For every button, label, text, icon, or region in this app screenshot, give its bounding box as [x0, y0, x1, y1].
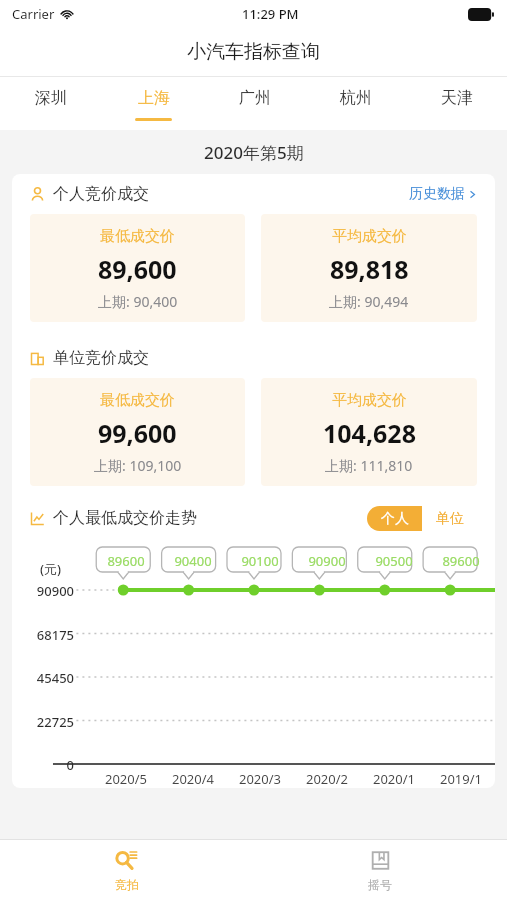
- button[interactable]: 天津: [406, 77, 507, 130]
- staticText: 上海: [138, 88, 170, 108]
- staticText: 2020/4: [163, 770, 223, 788]
- staticText: 68175: [12, 626, 74, 644]
- staticText: 2020/5: [96, 770, 156, 788]
- staticText: 89,818: [330, 252, 409, 286]
- staticText: 个人竞价成交: [53, 184, 149, 204]
- staticText: 90900: [297, 552, 357, 570]
- staticText: 0: [12, 756, 74, 774]
- staticText: 单位: [436, 510, 464, 528]
- staticText: 上期: 90,400: [98, 292, 178, 311]
- staticText: 2020/3: [230, 770, 290, 788]
- staticText: 杭州: [340, 88, 372, 108]
- staticText: 90900: [12, 582, 74, 600]
- staticText: 深圳: [35, 88, 67, 108]
- staticText: 摇号: [368, 877, 392, 892]
- staticText: 个人: [381, 510, 409, 528]
- button[interactable]: 单位: [422, 506, 477, 531]
- staticText: 2020年第5期: [204, 141, 304, 164]
- button[interactable]: 最低成交价: [30, 214, 245, 322]
- button[interactable]: 个人: [367, 506, 422, 531]
- staticText: 2020/2: [297, 770, 357, 788]
- staticText: (元): [40, 560, 62, 578]
- staticText: 89,600: [98, 252, 177, 286]
- staticText: 104,628: [323, 416, 416, 450]
- staticText: 上期: 109,100: [94, 456, 182, 475]
- staticText: 90400: [163, 552, 223, 570]
- staticText: 最低成交价: [100, 227, 175, 246]
- staticText: 小汽车指标查询: [187, 40, 320, 64]
- staticText: 单位竞价成交: [53, 348, 149, 368]
- staticText: 个人最低成交价走势: [53, 508, 197, 528]
- button[interactable]: 平均成交价: [261, 378, 477, 486]
- button[interactable]: 平均成交价: [261, 214, 477, 322]
- button[interactable]: 广州: [204, 77, 305, 130]
- staticText: Carrier: [12, 5, 55, 23]
- button[interactable]: 上海: [102, 77, 204, 130]
- staticText: 45450: [12, 669, 74, 687]
- staticText: 竞拍: [115, 877, 139, 892]
- staticText: 广州: [239, 88, 271, 108]
- staticText: 上期: 90,494: [329, 292, 409, 311]
- staticText: 90500: [364, 552, 424, 570]
- staticText: 2020/1: [364, 770, 424, 788]
- staticText: 99,600: [98, 416, 177, 450]
- staticText: 22725: [12, 713, 74, 731]
- button[interactable]: 历史数据: [409, 185, 477, 203]
- staticText: 历史数据: [409, 185, 465, 203]
- staticText: 89600: [96, 552, 156, 570]
- staticText: 平均成交价: [332, 227, 407, 246]
- staticText: 上期: 111,810: [325, 456, 413, 475]
- button[interactable]: 深圳: [0, 77, 102, 130]
- staticText: 11:29 PM: [242, 5, 299, 23]
- button[interactable]: 最低成交价: [30, 378, 245, 486]
- staticText: 2019/1: [431, 770, 491, 788]
- staticText: 天津: [441, 88, 473, 108]
- staticText: 平均成交价: [332, 391, 407, 410]
- button[interactable]: 摇号: [253, 840, 507, 900]
- staticText: 最低成交价: [100, 391, 175, 410]
- button[interactable]: 杭州: [305, 77, 406, 130]
- staticText: 89600: [431, 552, 491, 570]
- button[interactable]: 竞拍: [0, 840, 253, 900]
- staticText: 90100: [230, 552, 290, 570]
